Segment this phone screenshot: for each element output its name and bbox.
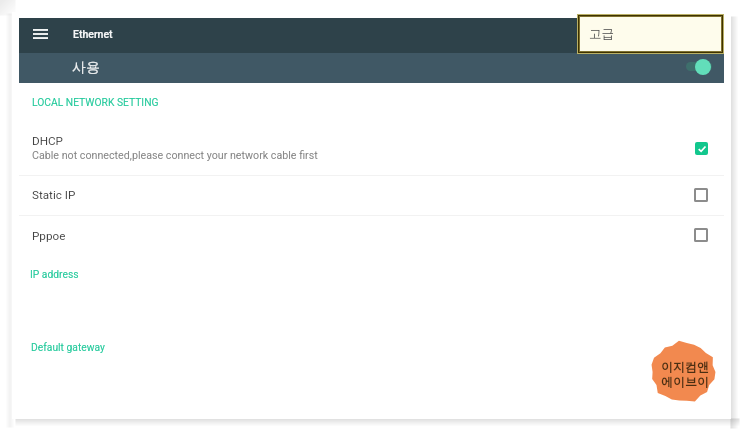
button[interactable]: Pppoe <box>12 215 731 255</box>
staticText: IP address <box>30 268 79 280</box>
button[interactable]: Static IP <box>12 175 731 215</box>
button[interactable]: Ethernet enabled <box>677 53 735 83</box>
staticText: 이지컴앤 <box>661 359 709 374</box>
button[interactable]: Default gateway <box>12 336 731 384</box>
staticText: Cable not connected,please connect your … <box>32 149 318 162</box>
button[interactable]: IP address <box>12 262 731 310</box>
staticText: Ethernet <box>73 28 113 40</box>
staticText: Default gateway <box>31 341 105 353</box>
staticText: Static IP <box>32 188 76 202</box>
staticText: LOCAL NETWORK SETTING <box>32 96 159 108</box>
staticText: Pppoe <box>32 229 66 243</box>
button[interactable]: 고급 <box>580 17 721 51</box>
button[interactable]: Open navigation menu <box>24 17 57 50</box>
button[interactable]: DHCP <box>12 126 731 174</box>
staticText: 고급 <box>589 26 614 42</box>
staticText: 에이브이 <box>661 374 709 389</box>
staticText: DHCP <box>32 134 63 148</box>
staticText: 사용 <box>72 59 100 77</box>
